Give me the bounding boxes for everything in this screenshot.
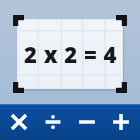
button[interactable]: Scan math problem <box>0 0 140 104</box>
button[interactable]: Divide <box>38 107 68 137</box>
staticText: 2 x 2 = 4 <box>24 39 117 69</box>
button[interactable]: Multiply <box>4 107 34 137</box>
button[interactable]: Add <box>106 107 136 137</box>
button[interactable]: Subtract <box>72 107 102 137</box>
